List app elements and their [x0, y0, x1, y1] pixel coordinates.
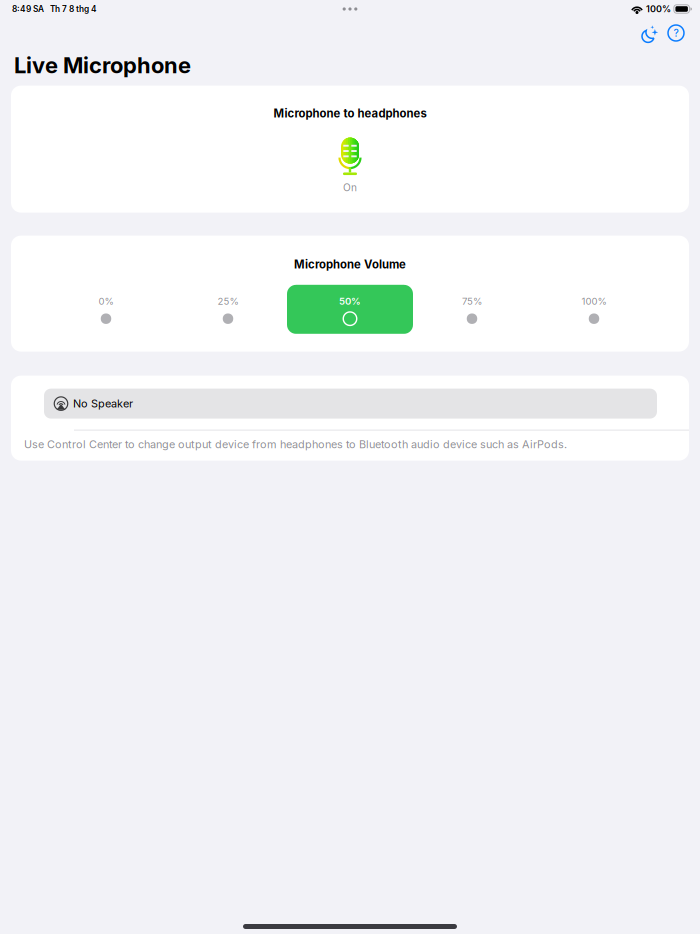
button[interactable]: No Speaker — [44, 389, 657, 419]
staticText: On — [343, 181, 357, 194]
staticText: Use Control Center to change output devi… — [24, 438, 567, 451]
staticText: 25% — [217, 295, 238, 307]
button[interactable]: 0% — [45, 285, 167, 333]
staticText: 0% — [98, 295, 113, 307]
staticText: 100% — [646, 3, 671, 14]
staticText: Microphone to headphones — [273, 107, 426, 120]
button[interactable]: 100% — [533, 285, 655, 333]
button[interactable]: 75% — [411, 285, 533, 333]
staticText: No Speaker — [73, 397, 133, 410]
staticText: 100% — [581, 295, 606, 307]
button[interactable]: 25% — [167, 285, 289, 333]
staticText: 8:49 SA — [12, 4, 44, 14]
staticText: Th 7 8 thg 4 — [50, 4, 97, 14]
staticText: Live Microphone — [14, 52, 191, 79]
staticText: Microphone Volume — [294, 258, 406, 271]
button[interactable]: 50% — [289, 285, 411, 333]
button[interactable]: Dark Mode — [633, 20, 659, 52]
staticText: 50% — [339, 295, 361, 307]
staticText: ? — [673, 27, 678, 39]
staticText: 75% — [462, 295, 482, 307]
button[interactable]: Help — [659, 20, 693, 52]
